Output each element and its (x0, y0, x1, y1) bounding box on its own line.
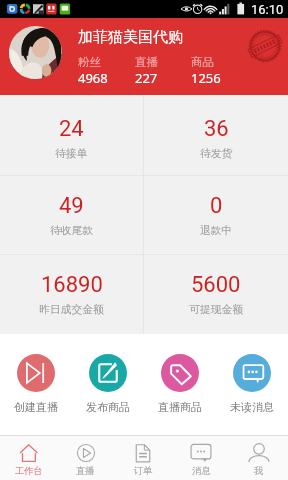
button[interactable]: 49 (0, 176, 143, 254)
button[interactable]: 创建直播 (0, 334, 72, 435)
button[interactable]: 工作台 (0, 436, 57, 480)
button[interactable]: 5600 (144, 255, 288, 334)
staticText: 5600 (191, 272, 241, 298)
staticText: 订单 (134, 465, 153, 477)
staticText: 未读消息 (230, 400, 274, 414)
button[interactable]: 粉丝 (78, 55, 135, 87)
button[interactable]: 24 (0, 95, 143, 175)
staticText: 0 (210, 193, 223, 219)
staticText: 49 (59, 193, 84, 219)
staticText: 待收尾款 (50, 224, 94, 238)
button[interactable]: 0 (144, 176, 288, 254)
staticText: 227 (135, 69, 158, 87)
staticText: 工作台 (15, 465, 43, 477)
button[interactable]: 订单 (114, 436, 172, 480)
button[interactable]: Avatar (9, 26, 62, 79)
button[interactable]: 36 (144, 95, 288, 175)
button[interactable]: 直播商品 (144, 334, 216, 435)
staticText: 加菲猫美国代购 (78, 28, 183, 47)
staticText: 直播 (76, 465, 95, 477)
staticText: 创建直播 (14, 400, 58, 414)
button[interactable]: 发布商品 (72, 334, 144, 435)
staticText: 消息 (192, 465, 211, 477)
staticText: 退款中 (200, 224, 233, 238)
staticText: 4968 (78, 69, 108, 87)
staticText: 待发货 (200, 147, 233, 161)
button[interactable]: 直播 (57, 436, 114, 480)
staticText: 粉丝 (78, 55, 101, 69)
button[interactable]: 16890 (0, 255, 143, 334)
staticText: 36 (204, 116, 229, 142)
button[interactable]: 消息 (172, 436, 230, 480)
staticText: 直播 (135, 55, 158, 69)
button[interactable]: 未读消息 (216, 334, 288, 435)
staticText: 直播商品 (158, 400, 202, 414)
staticText: 昨日成交金额 (39, 303, 104, 317)
staticText: 商品 (191, 55, 214, 69)
staticText: 可提现金额 (189, 303, 243, 317)
staticText: 1256 (191, 69, 221, 87)
staticText: 待接单 (55, 147, 88, 161)
staticText: 发布商品 (86, 400, 130, 414)
staticText: 16:10 (251, 2, 284, 17)
staticText: 24 (59, 116, 84, 142)
button[interactable]: 直播 (135, 55, 191, 87)
staticText: 16890 (41, 272, 103, 298)
staticText: 我 (254, 465, 264, 477)
button[interactable]: 我 (230, 436, 288, 480)
button[interactable]: 商品 (191, 55, 231, 87)
